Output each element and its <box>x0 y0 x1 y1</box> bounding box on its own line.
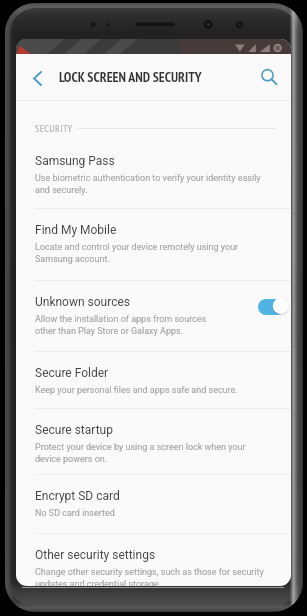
button[interactable]: Encrypt SD card <box>16 475 291 533</box>
button[interactable]: Find My Mobile <box>16 209 291 280</box>
staticText: Secure Folder <box>35 366 109 380</box>
staticText: Samsung Pass <box>35 154 115 168</box>
staticText: Other security settings <box>35 548 156 562</box>
button[interactable]: Secure startup <box>16 409 291 474</box>
staticText: Encrypt SD card <box>35 489 120 503</box>
staticText: Find My Mobile <box>35 223 117 237</box>
staticText: Locate and control your device remotely … <box>35 242 269 264</box>
button[interactable]: Other security settings <box>16 534 291 586</box>
staticText: Keep your personal files and apps safe a… <box>35 385 238 396</box>
staticText: Use biometric authentication to verify y… <box>35 173 269 195</box>
staticText: SECURITY <box>35 122 73 135</box>
button[interactable]: Samsung Pass <box>16 140 291 208</box>
button[interactable]: Navigate up <box>22 63 52 93</box>
button[interactable]: Search <box>255 63 283 91</box>
staticText: Unknown sources <box>35 295 131 309</box>
staticText: No SD card inserted <box>35 508 115 519</box>
staticText: Secure startup <box>35 423 113 437</box>
staticText: Change other security settings, such as … <box>35 567 269 586</box>
staticText: LOCK SCREEN AND SECURITY <box>59 68 202 86</box>
button[interactable]: Unknown sources switch <box>258 297 289 315</box>
button[interactable]: Secure Folder <box>16 352 291 408</box>
button[interactable]: Unknown sources <box>16 281 291 351</box>
staticText: Protect your device by using a screen lo… <box>35 442 269 464</box>
staticText: Allow the installation of apps from sour… <box>35 314 217 336</box>
